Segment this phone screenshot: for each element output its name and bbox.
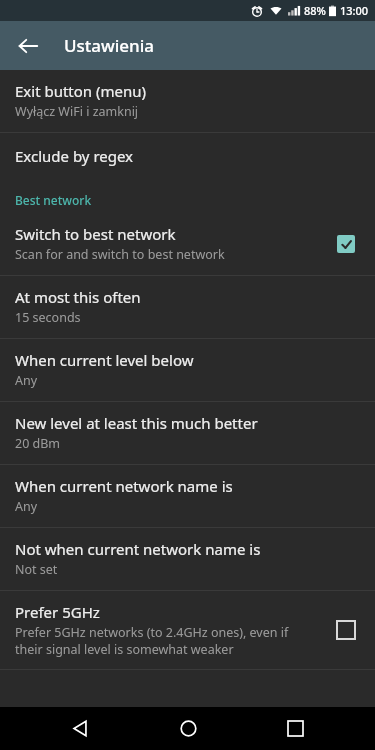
staticText: When current network name is — [15, 476, 233, 496]
staticText: Not set — [15, 561, 58, 578]
staticText: 20 dBm — [15, 435, 61, 452]
staticText: Any — [15, 498, 38, 515]
staticText: 88% — [304, 3, 326, 18]
staticText: 15 seconds — [15, 309, 81, 326]
staticText: Switch to best network — [15, 224, 176, 244]
staticText: Prefer 5GHz networks (to 2.4GHz ones), e… — [15, 624, 319, 657]
button[interactable]: Switch to best network — [329, 227, 363, 261]
staticText: New level at least this much better — [15, 413, 258, 433]
button[interactable]: When current level below — [0, 339, 375, 401]
staticText: When current level below — [15, 350, 194, 370]
staticText: 13:00 — [340, 3, 369, 18]
staticText: Wyłącz WiFi i zamknij — [15, 103, 139, 120]
button[interactable]: Home — [160, 707, 216, 750]
button[interactable]: Back — [52, 707, 108, 750]
button[interactable]: New level at least this much better — [0, 402, 375, 464]
staticText: Exclude by regex — [15, 146, 134, 166]
button[interactable]: At most this often — [0, 276, 375, 338]
button[interactable]: Back — [8, 26, 48, 66]
button[interactable]: Not when current network name is — [0, 528, 375, 590]
staticText: Any — [15, 372, 38, 389]
staticText: Not when current network name is — [15, 539, 261, 559]
staticText: At most this often — [15, 287, 141, 307]
button[interactable]: Exclude by regex — [0, 133, 375, 179]
button[interactable]: When current network name is — [0, 465, 375, 527]
button[interactable]: Prefer 5GHz — [0, 591, 375, 669]
staticText: Scan for and switch to best network — [15, 246, 225, 263]
staticText: Best network — [15, 192, 92, 208]
button[interactable]: Recent apps — [267, 707, 323, 750]
staticText: Exit button (menu) — [15, 81, 147, 101]
button[interactable]: Switch to best network — [0, 213, 375, 275]
staticText: Prefer 5GHz — [15, 602, 100, 622]
button[interactable]: Exit button (menu) — [0, 70, 375, 132]
button[interactable]: Prefer 5GHz — [329, 613, 363, 647]
staticText: Ustawienia — [64, 34, 155, 57]
